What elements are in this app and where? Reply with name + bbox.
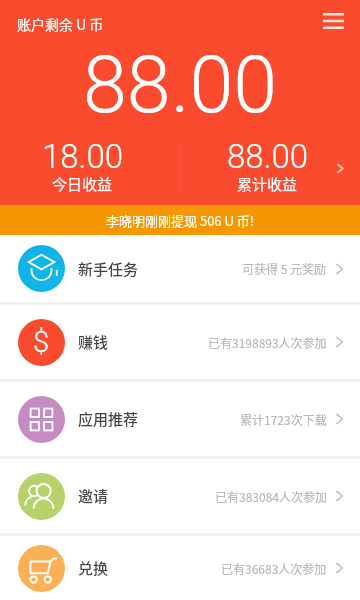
staticText: 已有383084人次参加 (215, 488, 327, 505)
button[interactable]: 新手任务 (0, 235, 360, 302)
button[interactable]: 18.00 (0, 137, 165, 198)
staticText: $ (33, 325, 50, 359)
staticText: 累计收益 (237, 173, 298, 195)
staticText: 已有36683人次参加 (221, 560, 327, 577)
staticText: 可获得 5 元奖励 (242, 260, 327, 277)
staticText: 李晓明刚刚提现 506 U 币! (106, 211, 254, 230)
staticText: 应用推荐 (78, 408, 139, 430)
button[interactable]: 88.00 (185, 137, 350, 198)
staticText: 18.00 (42, 137, 124, 176)
button[interactable]: 兑换 (0, 536, 360, 600)
staticText: 账户剩余 U 币 (17, 14, 104, 34)
staticText: 今日收益 (52, 173, 113, 195)
staticText: 邀请 (78, 485, 109, 507)
staticText: 赚钱 (78, 331, 109, 353)
staticText: 累计1723次下载 (240, 411, 327, 428)
staticText: 88.00 (83, 39, 278, 132)
button[interactable]: Menu (313, 1, 353, 41)
staticText: 新手任务 (78, 258, 139, 280)
button[interactable]: $ (0, 305, 360, 379)
button[interactable]: 邀请 (0, 459, 360, 533)
staticText: 兑换 (78, 557, 109, 579)
button[interactable]: 李晓明刚刚提现 506 U 币! (0, 205, 360, 235)
button[interactable]: More (330, 157, 352, 179)
staticText: 88.00 (227, 137, 309, 176)
staticText: 已有3198893人次参加 (208, 334, 327, 351)
button[interactable]: 应用推荐 (0, 382, 360, 456)
